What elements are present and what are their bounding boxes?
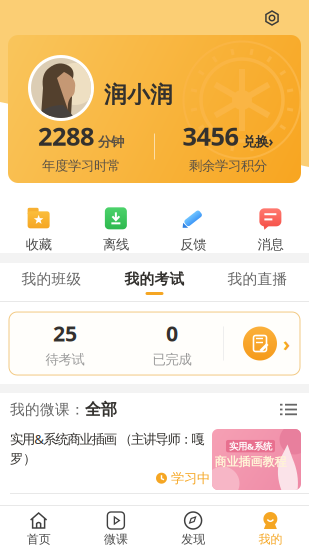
staticText: 我的微课： [10, 400, 85, 418]
staticText: 25 [53, 319, 77, 347]
staticText: 实用&系统 [229, 440, 272, 452]
button[interactable]: 消息 [232, 207, 309, 253]
button[interactable] [280, 404, 297, 415]
staticText: 待考试 [45, 351, 84, 368]
staticText: 实用&系统商业插画 （主讲导师：嘎 [10, 430, 205, 448]
button[interactable]: 3456 [155, 119, 301, 174]
staticText: 微课 [104, 532, 128, 547]
button[interactable]: 我的班级 [0, 270, 103, 288]
button[interactable] [264, 10, 280, 26]
staticText: 商业插画教程 [214, 454, 286, 469]
staticText: 润小润 [104, 81, 173, 109]
staticText: 消息 [257, 236, 283, 253]
button[interactable]: 我的 [232, 512, 309, 547]
staticText: 已完成 [152, 351, 191, 368]
button[interactable]: 25 [9, 312, 300, 375]
staticText: 发现 [181, 532, 205, 547]
staticText: 首页 [27, 532, 51, 547]
button[interactable]: 发现 [154, 512, 232, 547]
button[interactable]: 我的直播 [206, 270, 309, 288]
staticText: › [283, 330, 290, 357]
staticText: 离线 [103, 236, 129, 253]
button[interactable]: 收藏 [0, 207, 77, 253]
staticText: 兑换› [242, 132, 273, 150]
button[interactable]: 实用&系统商业插画 （主讲导师：嘎 [0, 426, 309, 494]
button[interactable]: 微课 [77, 512, 154, 547]
staticText: 我的班级 [21, 270, 81, 288]
staticText: 我的考试 [124, 270, 184, 288]
staticText: 剩余学习积分 [189, 158, 267, 174]
staticText: 0 [166, 319, 178, 347]
staticText: 收藏 [26, 236, 52, 253]
staticText: 分钟 [98, 134, 124, 150]
button[interactable]: 首页 [0, 512, 77, 547]
staticText: 3456 [182, 119, 238, 153]
staticText: 我的直播 [227, 270, 287, 288]
staticText: 我的 [258, 532, 282, 547]
staticText: 全部 [85, 400, 117, 419]
staticText: 2288 [38, 119, 94, 153]
staticText: 年度学习时常 [42, 158, 120, 174]
staticText: 罗） [10, 451, 36, 467]
button[interactable]: 我的考试 [103, 270, 206, 288]
button[interactable]: 离线 [77, 207, 154, 253]
staticText: 学习中 [171, 470, 210, 486]
button[interactable]: 反馈 [154, 207, 232, 253]
staticText: 反馈 [180, 236, 206, 253]
